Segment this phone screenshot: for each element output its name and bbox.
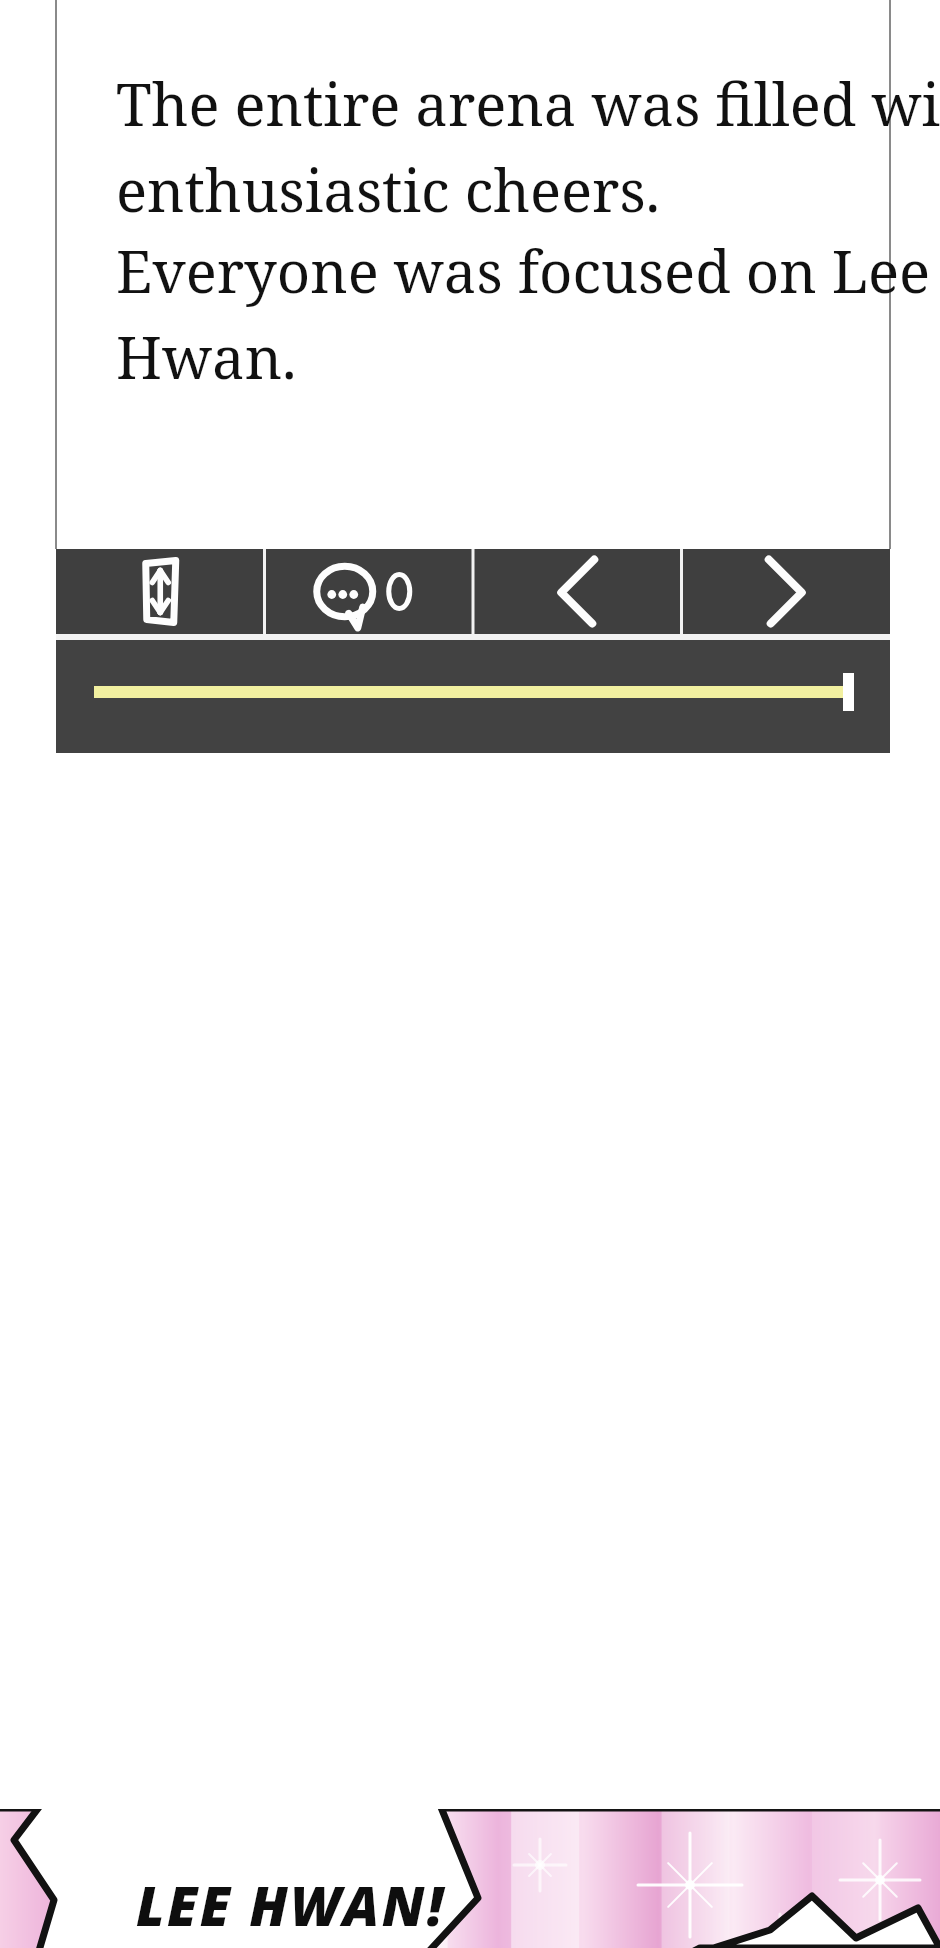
- staticText: The entire arena was filled with enthusi…: [116, 64, 940, 229]
- button[interactable]: Previous episode: [473, 549, 682, 634]
- button[interactable]: Toggle scroll mode: [56, 549, 265, 634]
- button[interactable]: Comments, 0: [265, 549, 474, 634]
- button[interactable]: Next episode: [682, 549, 891, 634]
- staticText: LEE HWAN!: [136, 1868, 446, 1942]
- staticText: Everyone was focused on Lee Hwan.: [116, 231, 940, 396]
- button[interactable]: Reading progress: [56, 640, 890, 753]
